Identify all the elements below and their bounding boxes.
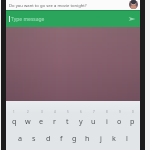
staticText: f — [60, 133, 63, 143]
button[interactable]: l — [120, 132, 133, 144]
staticText: d — [46, 133, 51, 143]
staticText: t — [66, 116, 69, 126]
staticText: e — [39, 116, 44, 126]
button[interactable]: o — [113, 115, 126, 127]
staticText: w — [25, 116, 31, 126]
staticText: 5 — [67, 110, 69, 114]
staticText: i — [106, 116, 108, 126]
button[interactable]: u — [87, 115, 100, 127]
staticText: o — [117, 116, 122, 126]
button[interactable]: q — [7, 115, 21, 127]
button[interactable]: 5 — [61, 110, 74, 114]
staticText: 7 — [93, 110, 95, 114]
button[interactable]: k — [107, 132, 120, 144]
staticText: 1 — [13, 110, 15, 114]
button[interactable]: Type message — [6, 11, 140, 27]
button[interactable]: a — [13, 132, 27, 144]
staticText: Type message — [11, 16, 127, 23]
button[interactable]: Contact avatar — [129, 0, 138, 9]
staticText: h — [85, 133, 90, 143]
staticText: 0 — [132, 110, 134, 114]
button[interactable]: t — [61, 115, 74, 127]
staticText: k — [112, 133, 116, 143]
button[interactable]: 1 — [7, 110, 21, 114]
button[interactable]: s — [27, 132, 41, 144]
staticText: p — [130, 116, 135, 126]
staticText: y — [79, 116, 83, 126]
button[interactable]: e — [35, 115, 48, 127]
button[interactable]: 6 — [74, 110, 87, 114]
staticText: 6 — [80, 110, 82, 114]
button[interactable]: 0 — [126, 110, 139, 114]
button[interactable]: f — [55, 132, 68, 144]
staticText: u — [91, 116, 96, 126]
button[interactable]: 8 — [100, 110, 113, 114]
staticText: a — [18, 133, 23, 143]
staticText: 2 — [27, 110, 29, 114]
button[interactable]: 4 — [48, 110, 61, 114]
button[interactable]: y — [74, 115, 87, 127]
staticText: g — [72, 133, 77, 143]
button[interactable]: 3 — [35, 110, 48, 114]
staticText: 3 — [41, 110, 43, 114]
staticText: 8 — [106, 110, 108, 114]
button[interactable]: 9 — [113, 110, 126, 114]
button[interactable]: d — [41, 132, 55, 144]
button[interactable]: j — [94, 132, 107, 144]
button[interactable]: p — [126, 115, 139, 127]
button[interactable]: 7 — [87, 110, 100, 114]
button[interactable]: i — [100, 115, 113, 127]
button[interactable]: w — [21, 115, 35, 127]
staticText: q — [12, 116, 17, 126]
button[interactable]: g — [68, 132, 81, 144]
button[interactable]: 2 — [21, 110, 35, 114]
button[interactable]: Send — [127, 14, 137, 24]
staticText: l — [126, 133, 128, 143]
button[interactable]: r — [48, 115, 61, 127]
staticText: 9 — [119, 110, 121, 114]
staticText: Do you want to go see a movie tonight? — [9, 3, 127, 9]
staticText: 4 — [54, 110, 56, 114]
staticText: s — [32, 133, 36, 143]
staticText: j — [100, 133, 102, 143]
button[interactable]: Do you want to go see a movie tonight? — [6, 0, 140, 11]
button[interactable]: h — [81, 132, 94, 144]
staticText: r — [53, 116, 56, 126]
